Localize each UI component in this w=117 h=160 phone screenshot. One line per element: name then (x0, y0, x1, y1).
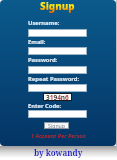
button[interactable] (28, 66, 87, 74)
staticText: Repeat Password: (28, 75, 80, 83)
button[interactable] (28, 29, 87, 37)
staticText: 1 Account Per Person (31, 132, 86, 139)
staticText: 3194n6 (46, 93, 69, 101)
staticText: Password: (28, 56, 58, 64)
staticText: Enter Code: (28, 102, 62, 110)
staticText: Email: (28, 38, 46, 46)
button[interactable]: Signup (44, 122, 69, 129)
button[interactable] (28, 84, 87, 92)
staticText: Signup (40, 0, 75, 13)
staticText: Username: (28, 19, 60, 27)
staticText: by kowandy (34, 147, 83, 158)
button[interactable] (28, 47, 87, 55)
staticText: Signup (48, 122, 65, 129)
button[interactable] (28, 110, 87, 118)
